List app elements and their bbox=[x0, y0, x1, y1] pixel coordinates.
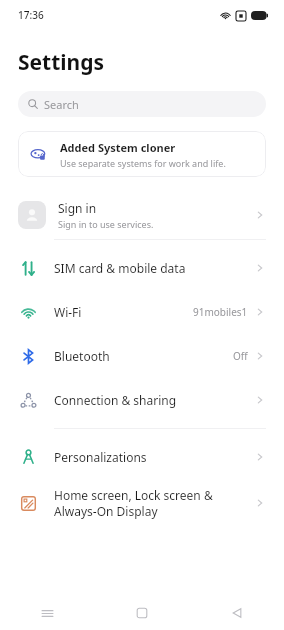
staticText: Bluetooth bbox=[54, 348, 233, 364]
button[interactable]: Connection & sharing bbox=[0, 378, 284, 422]
button[interactable]: SIM card & mobile data bbox=[0, 246, 284, 290]
staticText: Home screen, Lock screen & Always-On Dis… bbox=[54, 487, 254, 519]
button[interactable]: Added System cloner bbox=[18, 131, 266, 177]
button[interactable]: Home bbox=[94, 596, 189, 630]
staticText: Search bbox=[44, 97, 79, 112]
button[interactable]: Personalizations bbox=[0, 435, 284, 479]
button[interactable]: Home screen, Lock screen & Always-On Dis… bbox=[0, 479, 284, 527]
button[interactable]: Wi-Fi bbox=[0, 290, 284, 334]
staticText: 91mobiles1 bbox=[193, 305, 248, 319]
button[interactable]: Sign in bbox=[0, 191, 284, 239]
staticText: Use separate systems for work and life. bbox=[60, 157, 226, 169]
staticText: Wi-Fi bbox=[54, 304, 193, 320]
button[interactable]: Search bbox=[18, 91, 266, 117]
staticText: SIM card & mobile data bbox=[54, 260, 254, 276]
button[interactable]: Bluetooth bbox=[0, 334, 284, 378]
staticText: Sign in bbox=[58, 200, 97, 216]
staticText: Sign in to use services. bbox=[58, 218, 154, 230]
staticText: Personalizations bbox=[54, 449, 254, 465]
staticText: Connection & sharing bbox=[54, 392, 254, 408]
staticText: Settings bbox=[18, 48, 105, 77]
button[interactable]: Back bbox=[189, 596, 284, 630]
button[interactable]: Recent apps bbox=[0, 596, 94, 630]
staticText: Off bbox=[233, 349, 248, 363]
staticText: Added System cloner bbox=[60, 140, 176, 155]
staticText: 17:36 bbox=[18, 8, 44, 22]
